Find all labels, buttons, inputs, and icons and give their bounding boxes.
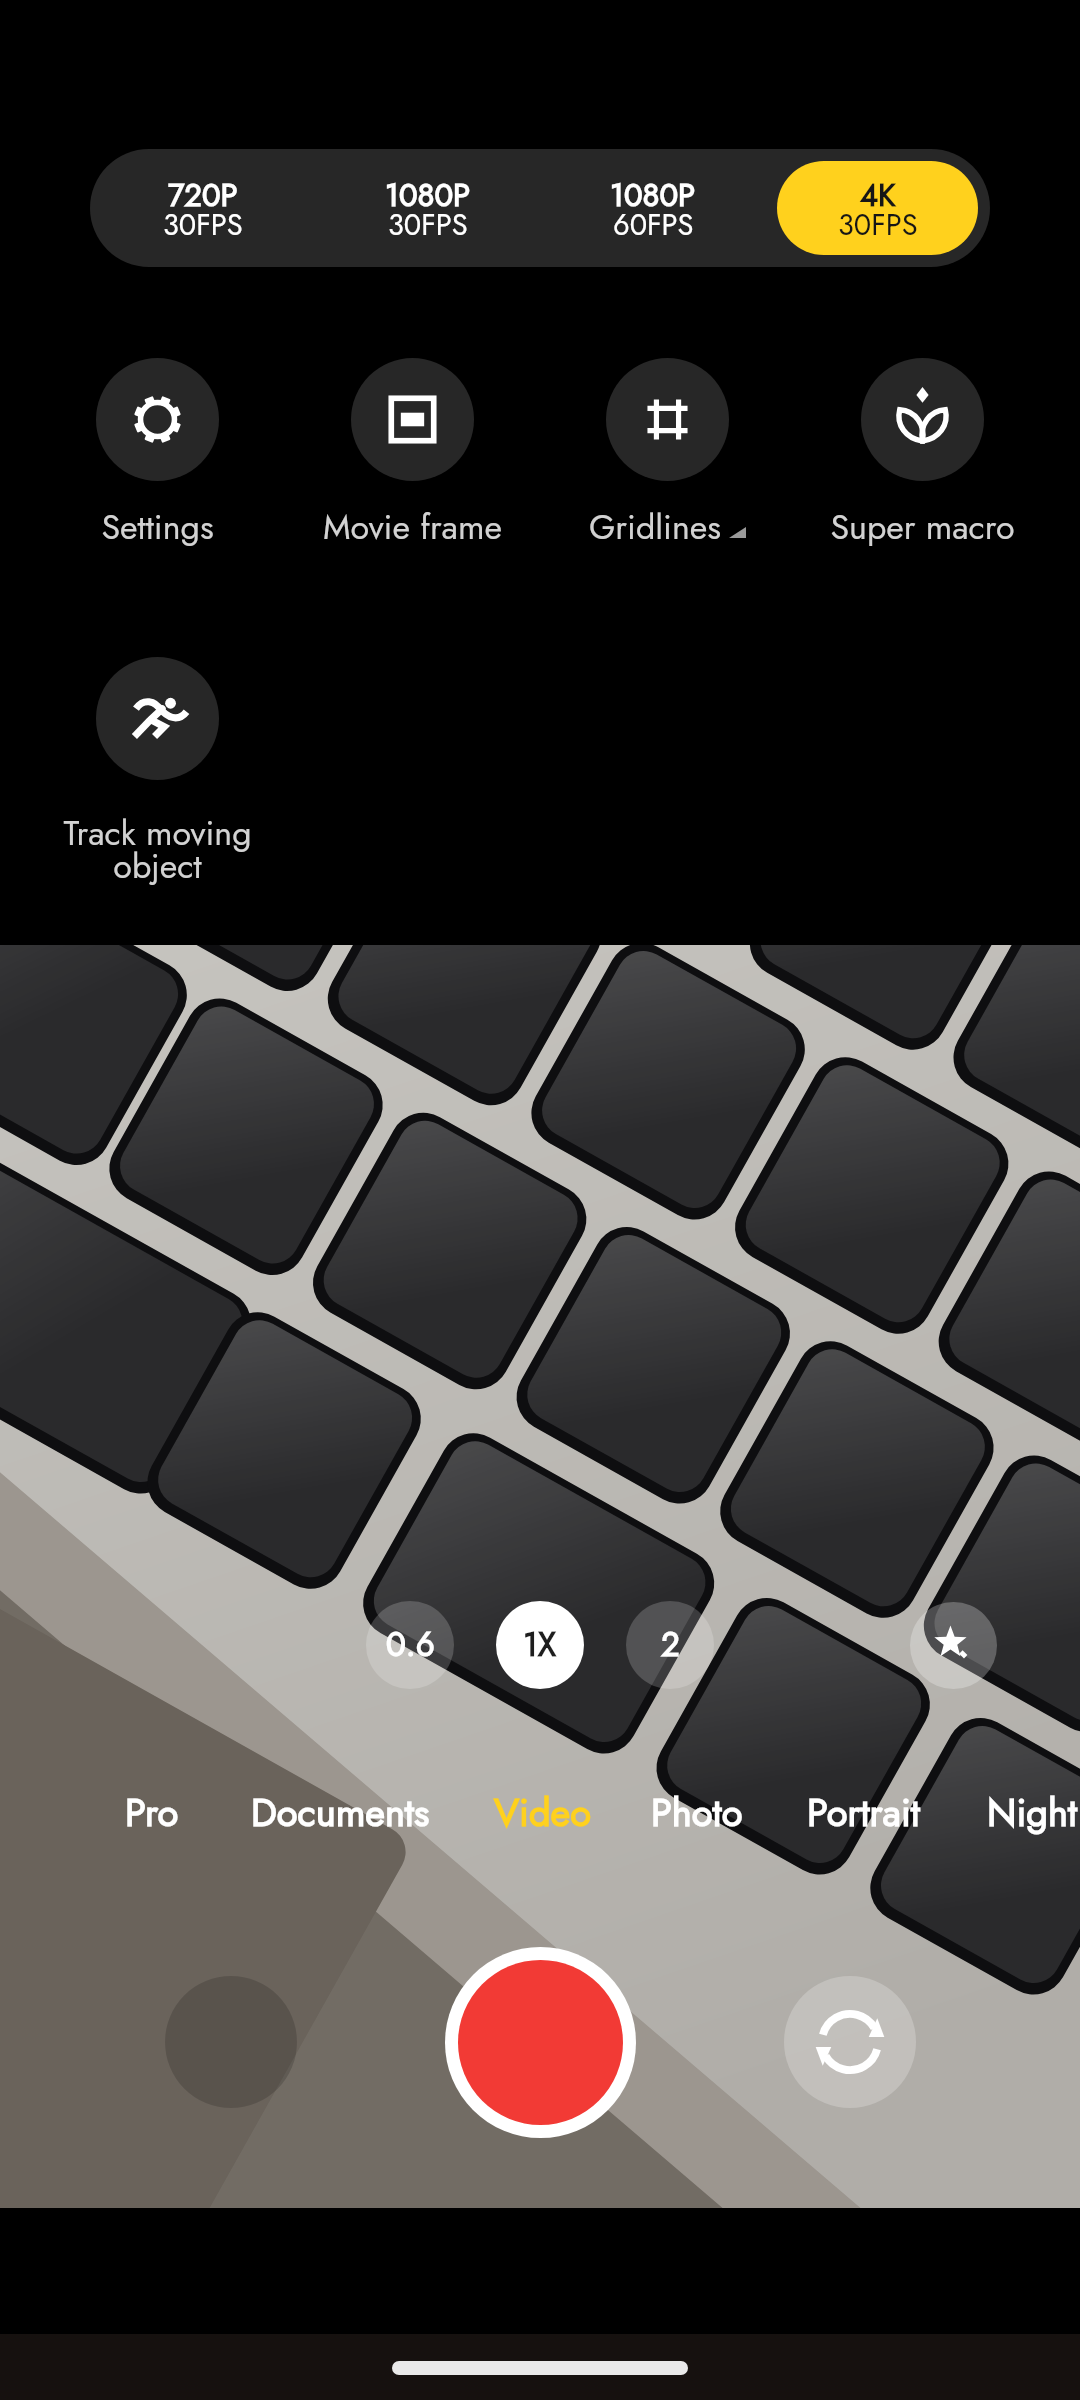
staticText: 30FPS — [838, 204, 918, 246]
button[interactable]: Photo — [651, 1775, 743, 1850]
staticText: 1080P — [610, 173, 696, 218]
button[interactable]: 720P — [90, 149, 315, 267]
button[interactable]: 2 — [626, 1601, 714, 1689]
staticText: 2 — [661, 1621, 680, 1669]
button[interactable]: AI enhance — [910, 1602, 997, 1689]
staticText: 1080P — [385, 173, 471, 218]
button[interactable]: Portrait — [807, 1775, 920, 1850]
staticText: 30FPS — [388, 204, 468, 246]
staticText: 4K — [860, 173, 896, 218]
button[interactable]: 1X — [496, 1601, 584, 1689]
button[interactable]: Night — [987, 1775, 1078, 1850]
button[interactable]: Gallery — [165, 1976, 297, 2108]
button[interactable]: Gridlines — [540, 358, 795, 552]
button[interactable]: 0.6 — [366, 1601, 454, 1689]
staticText: Photo — [651, 1785, 743, 1840]
button[interactable]: Video — [494, 1775, 591, 1850]
staticText: 1X — [523, 1621, 557, 1669]
staticText: 0.6 — [386, 1621, 435, 1669]
button[interactable]: 1080P — [540, 149, 765, 267]
staticText: 60FPS — [613, 204, 694, 246]
staticText: Movie frame — [323, 503, 502, 552]
button[interactable]: Movie frame — [285, 358, 540, 552]
button[interactable]: Documents — [251, 1775, 430, 1850]
staticText: Gridlines — [589, 503, 721, 552]
staticText: 720P — [168, 173, 238, 218]
staticText: Track moving object — [63, 809, 252, 891]
button[interactable]: Super macro — [795, 358, 1050, 552]
staticText: Pro — [125, 1785, 179, 1840]
button[interactable]: Switch camera — [784, 1976, 916, 2108]
staticText: Settings — [101, 503, 214, 552]
button[interactable]: 4K — [777, 161, 978, 255]
button[interactable]: Record — [445, 1947, 636, 2138]
staticText: Super macro — [830, 503, 1015, 552]
staticText: 30FPS — [163, 204, 243, 246]
button[interactable]: 1080P — [315, 149, 540, 267]
button[interactable]: Pro — [125, 1775, 179, 1850]
staticText: Video — [494, 1785, 591, 1840]
staticText: Documents — [251, 1785, 430, 1840]
staticText: Night — [987, 1785, 1078, 1840]
button[interactable]: Track moving object — [30, 657, 285, 891]
button[interactable]: Settings — [30, 358, 285, 552]
staticText: Portrait — [807, 1785, 920, 1840]
